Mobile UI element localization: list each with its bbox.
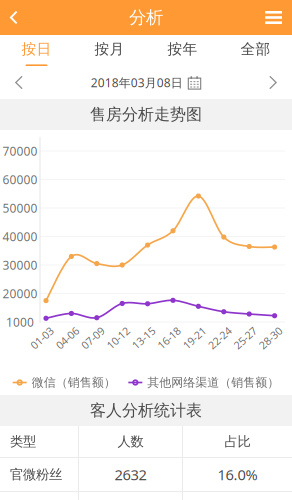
staticText: 1000: [6, 314, 34, 330]
staticText: 60000: [2, 171, 37, 187]
button[interactable]: 按日: [0, 35, 73, 66]
staticText: 人数: [117, 433, 143, 450]
staticText: 按年: [167, 40, 197, 58]
staticText: 07-09: [79, 331, 106, 345]
staticText: 30000: [2, 257, 37, 273]
staticText: 16.0%: [217, 465, 257, 484]
button[interactable]: 返回: [0, 1, 25, 33]
staticText: 占比: [224, 433, 250, 450]
staticText: 按日: [21, 40, 51, 58]
staticText: 28-30: [257, 331, 284, 345]
button[interactable]: 全部: [219, 35, 292, 66]
staticText: 10-12: [105, 331, 132, 345]
staticText: 2018年03月08日: [91, 74, 183, 90]
button[interactable]: 2018年03月08日: [91, 66, 201, 98]
staticText: 官微粉丝: [10, 466, 62, 483]
staticText: 40000: [2, 228, 37, 244]
staticText: 70000: [2, 143, 37, 159]
staticText: 13-15: [130, 331, 157, 345]
button[interactable]: 按年: [146, 35, 219, 66]
staticText: 50000: [2, 200, 37, 216]
staticText: 售房分析走势图: [90, 105, 202, 124]
staticText: 按月: [94, 40, 124, 58]
button[interactable]: 上一天: [3, 66, 33, 98]
staticText: 19-21: [181, 331, 208, 345]
staticText: 25-27: [232, 331, 259, 345]
staticText: 01-03: [28, 331, 55, 345]
button[interactable]: 下一天: [259, 66, 289, 98]
staticText: 2632: [114, 465, 146, 484]
staticText: 04-06: [54, 331, 81, 345]
staticText: 分析: [129, 7, 163, 28]
staticText: 20000: [2, 285, 37, 301]
staticText: 其他网络渠道（销售额）: [147, 375, 279, 390]
staticText: 全部: [240, 40, 270, 58]
button[interactable]: 菜单: [257, 1, 292, 34]
staticText: 22-24: [206, 331, 233, 345]
staticText: 微信（销售额）: [32, 375, 116, 390]
staticText: 16-18: [155, 331, 182, 345]
staticText: 客人分析统计表: [90, 401, 202, 420]
staticText: 类型: [10, 433, 36, 450]
button[interactable]: 按月: [73, 35, 146, 66]
